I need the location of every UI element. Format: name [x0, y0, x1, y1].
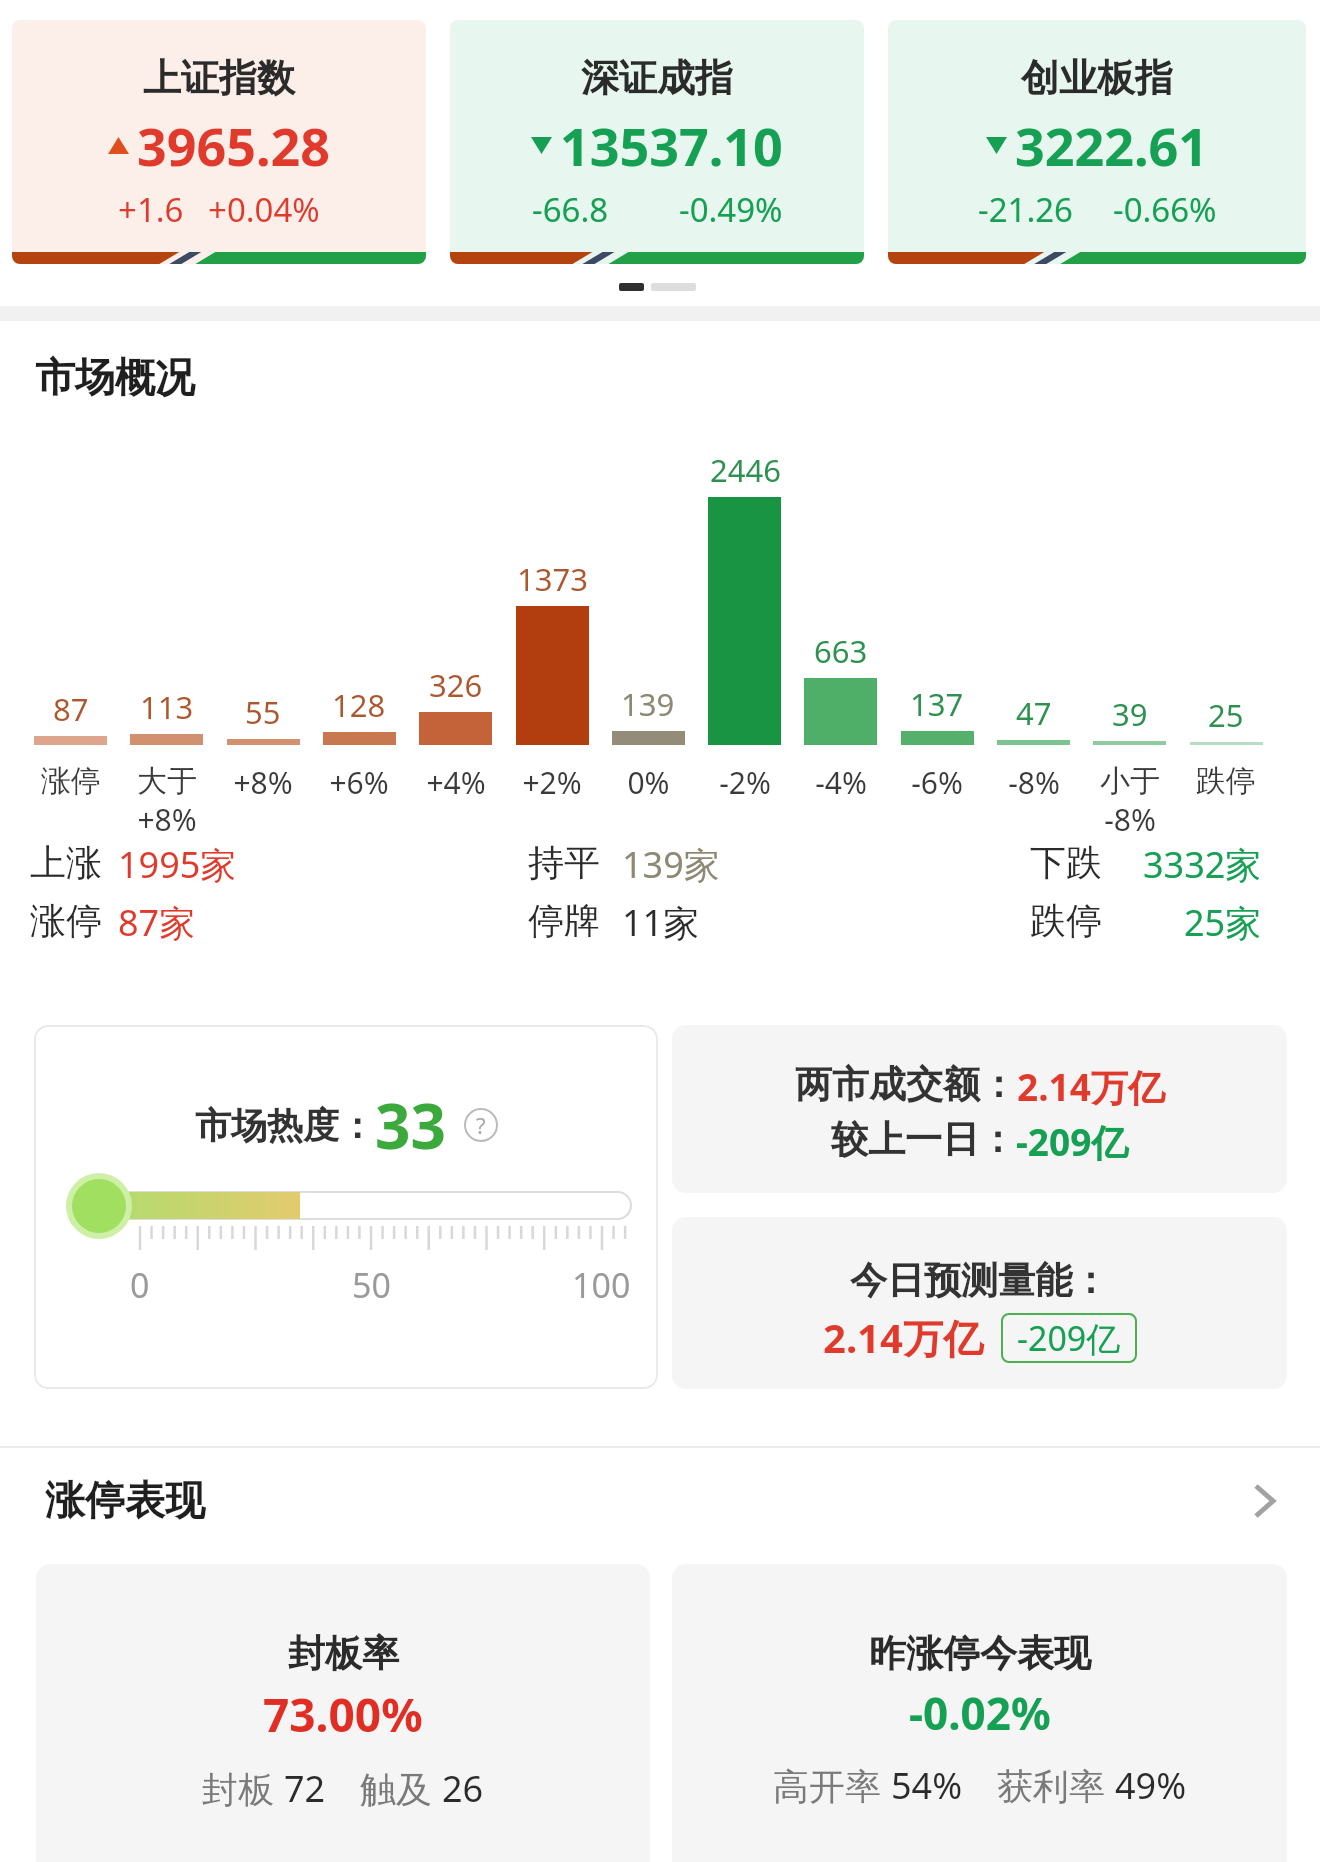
- staticText: 39: [1112, 693, 1148, 735]
- staticText: -0.02%: [909, 1683, 1051, 1743]
- staticText: 较上一日：: [831, 1116, 1016, 1163]
- staticText: +1.6: [118, 187, 184, 232]
- button[interactable]: 创业板指: [888, 20, 1306, 264]
- staticText: 获利率: [997, 1761, 1115, 1810]
- staticText: 139家: [622, 840, 720, 889]
- staticText: -21.26: [978, 187, 1073, 232]
- staticText: 47: [1016, 692, 1052, 734]
- staticText: 128: [332, 684, 386, 726]
- staticText: 25: [1208, 694, 1244, 736]
- staticText: 上证指数: [143, 54, 295, 102]
- staticText: +8%: [233, 762, 293, 803]
- staticText: 2.14万亿: [823, 1310, 983, 1365]
- staticText: +0.04%: [208, 187, 320, 232]
- staticText: 创业板指: [1021, 54, 1173, 102]
- staticText: ?: [476, 1110, 486, 1140]
- staticText: 上涨: [30, 840, 102, 885]
- staticText: 50: [352, 1262, 391, 1308]
- staticText: 87: [53, 688, 89, 730]
- staticText: -209亿: [1016, 1116, 1129, 1167]
- staticText: 封板率: [288, 1630, 399, 1677]
- staticText: 11家: [622, 898, 700, 947]
- staticText: 涨停表现: [45, 1475, 205, 1525]
- staticText: 49%: [1115, 1761, 1187, 1810]
- button[interactable]: 深证成指: [450, 20, 864, 264]
- staticText: 0: [130, 1262, 150, 1308]
- staticText: -2%: [719, 762, 771, 803]
- staticText: 3222.61: [1015, 110, 1209, 181]
- staticText: 326: [429, 664, 483, 706]
- staticText: 3332家: [1143, 840, 1262, 889]
- staticText: -0.66%: [1113, 187, 1217, 232]
- staticText: -4%: [815, 762, 867, 803]
- staticText: 33: [375, 1083, 446, 1167]
- staticText: 13537.10: [560, 110, 783, 181]
- staticText: 深证成指: [581, 54, 733, 102]
- staticText: 涨停: [41, 762, 101, 800]
- staticText: 1995家: [118, 840, 237, 889]
- staticText: 137: [910, 683, 964, 725]
- staticText: 停牌: [528, 898, 600, 943]
- staticText: 下跌: [1030, 840, 1102, 885]
- button[interactable]: [1254, 1484, 1275, 1518]
- staticText: 0%: [627, 762, 670, 803]
- staticText: 跌停: [1030, 898, 1102, 943]
- staticText: 139: [621, 683, 675, 725]
- button[interactable]: 上证指数: [12, 20, 426, 264]
- staticText: 触及: [360, 1764, 442, 1813]
- button[interactable]: 封板率: [36, 1564, 650, 1862]
- staticText: 封板: [202, 1764, 284, 1813]
- button[interactable]: 昨涨停今表现: [672, 1564, 1287, 1862]
- staticText: +6%: [329, 762, 389, 803]
- staticText: 54%: [891, 1761, 963, 1810]
- button[interactable]: 两市成交额：: [672, 1025, 1287, 1193]
- staticText: 高开率: [773, 1761, 891, 1810]
- staticText: 1373: [517, 558, 588, 600]
- staticText: 87家: [118, 898, 196, 947]
- staticText: 100: [572, 1262, 631, 1308]
- staticText: -209亿: [1017, 1315, 1121, 1361]
- staticText: 26: [442, 1764, 484, 1813]
- staticText: 今日预测量能：: [850, 1257, 1109, 1304]
- staticText: 2.14万亿: [1017, 1061, 1165, 1112]
- staticText: -6%: [911, 762, 963, 803]
- staticText: -8%: [1008, 762, 1060, 803]
- staticText: 昨涨停今表现: [869, 1630, 1091, 1677]
- staticText: -0.49%: [679, 187, 783, 232]
- staticText: 跌停: [1196, 762, 1256, 800]
- staticText: -66.8: [532, 187, 609, 232]
- staticText: 市场热度：: [195, 1103, 375, 1148]
- staticText: 72: [284, 1764, 326, 1813]
- staticText: 涨停: [30, 898, 102, 943]
- staticText: 663: [814, 630, 868, 672]
- button[interactable]: 市场热度：: [34, 1025, 658, 1389]
- staticText: 2446: [710, 449, 781, 491]
- staticText: 市场概况: [35, 352, 195, 402]
- staticText: 大于 +8%: [137, 762, 197, 840]
- staticText: 持平: [528, 840, 600, 885]
- staticText: 3965.28: [137, 110, 331, 181]
- staticText: 55: [245, 691, 281, 733]
- staticText: 113: [140, 686, 194, 728]
- staticText: 两市成交额：: [795, 1061, 1017, 1108]
- staticText: 小于 -8%: [1100, 762, 1160, 840]
- staticText: +2%: [522, 762, 582, 803]
- staticText: 25家: [1184, 898, 1262, 947]
- staticText: +4%: [426, 762, 486, 803]
- staticText: 73.00%: [263, 1683, 423, 1746]
- button[interactable]: 今日预测量能：: [672, 1217, 1287, 1389]
